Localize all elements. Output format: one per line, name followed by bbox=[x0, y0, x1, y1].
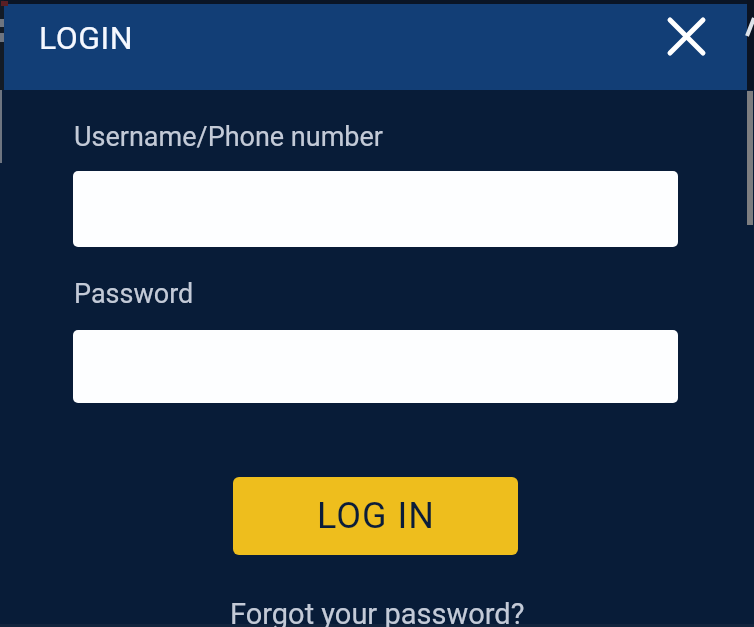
staticText: Password bbox=[74, 278, 194, 310]
staticText: Username/Phone number bbox=[74, 121, 383, 153]
staticText: LOGIN bbox=[39, 19, 134, 57]
button[interactable] bbox=[652, 2, 720, 70]
button[interactable]: Forgot your password? bbox=[230, 597, 525, 627]
button[interactable] bbox=[73, 171, 678, 247]
staticText: LOG IN bbox=[317, 495, 435, 537]
button[interactable] bbox=[73, 330, 678, 403]
button[interactable]: LOG IN bbox=[233, 477, 518, 555]
